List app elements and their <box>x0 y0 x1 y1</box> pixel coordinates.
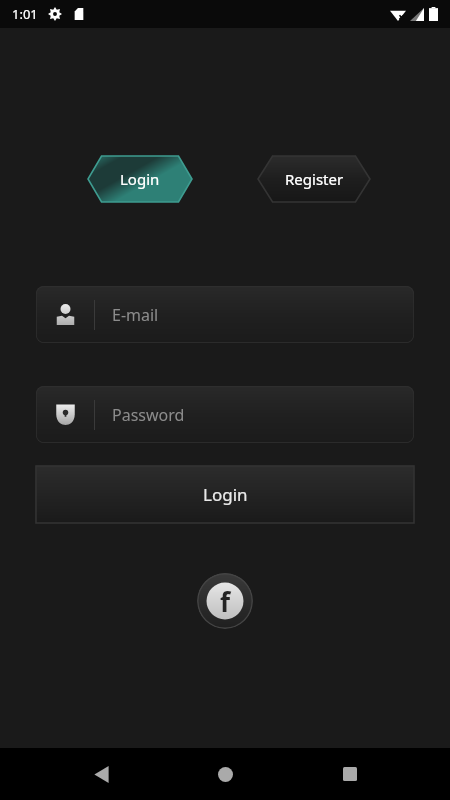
button[interactable]: Login <box>88 156 192 202</box>
other: Account icon <box>53 302 78 327</box>
other: Password icon <box>53 402 78 427</box>
button[interactable]: Home <box>201 750 249 798</box>
button[interactable]: Back <box>77 750 125 798</box>
button[interactable]: Register <box>258 156 370 202</box>
button[interactable]: Login <box>36 466 414 523</box>
staticText: Login <box>120 169 160 189</box>
button[interactable]: Password icon <box>36 386 414 443</box>
staticText: f <box>220 584 231 619</box>
staticText: E-mail <box>112 304 159 326</box>
staticText: Password <box>112 404 185 426</box>
button[interactable]: Recent apps <box>326 750 374 798</box>
staticText: Register <box>285 169 344 189</box>
staticText: 1:01 <box>12 5 38 23</box>
button[interactable]: Sign in with Facebook <box>197 573 253 629</box>
button[interactable]: Account icon <box>36 286 414 343</box>
staticText: Login <box>203 483 248 506</box>
